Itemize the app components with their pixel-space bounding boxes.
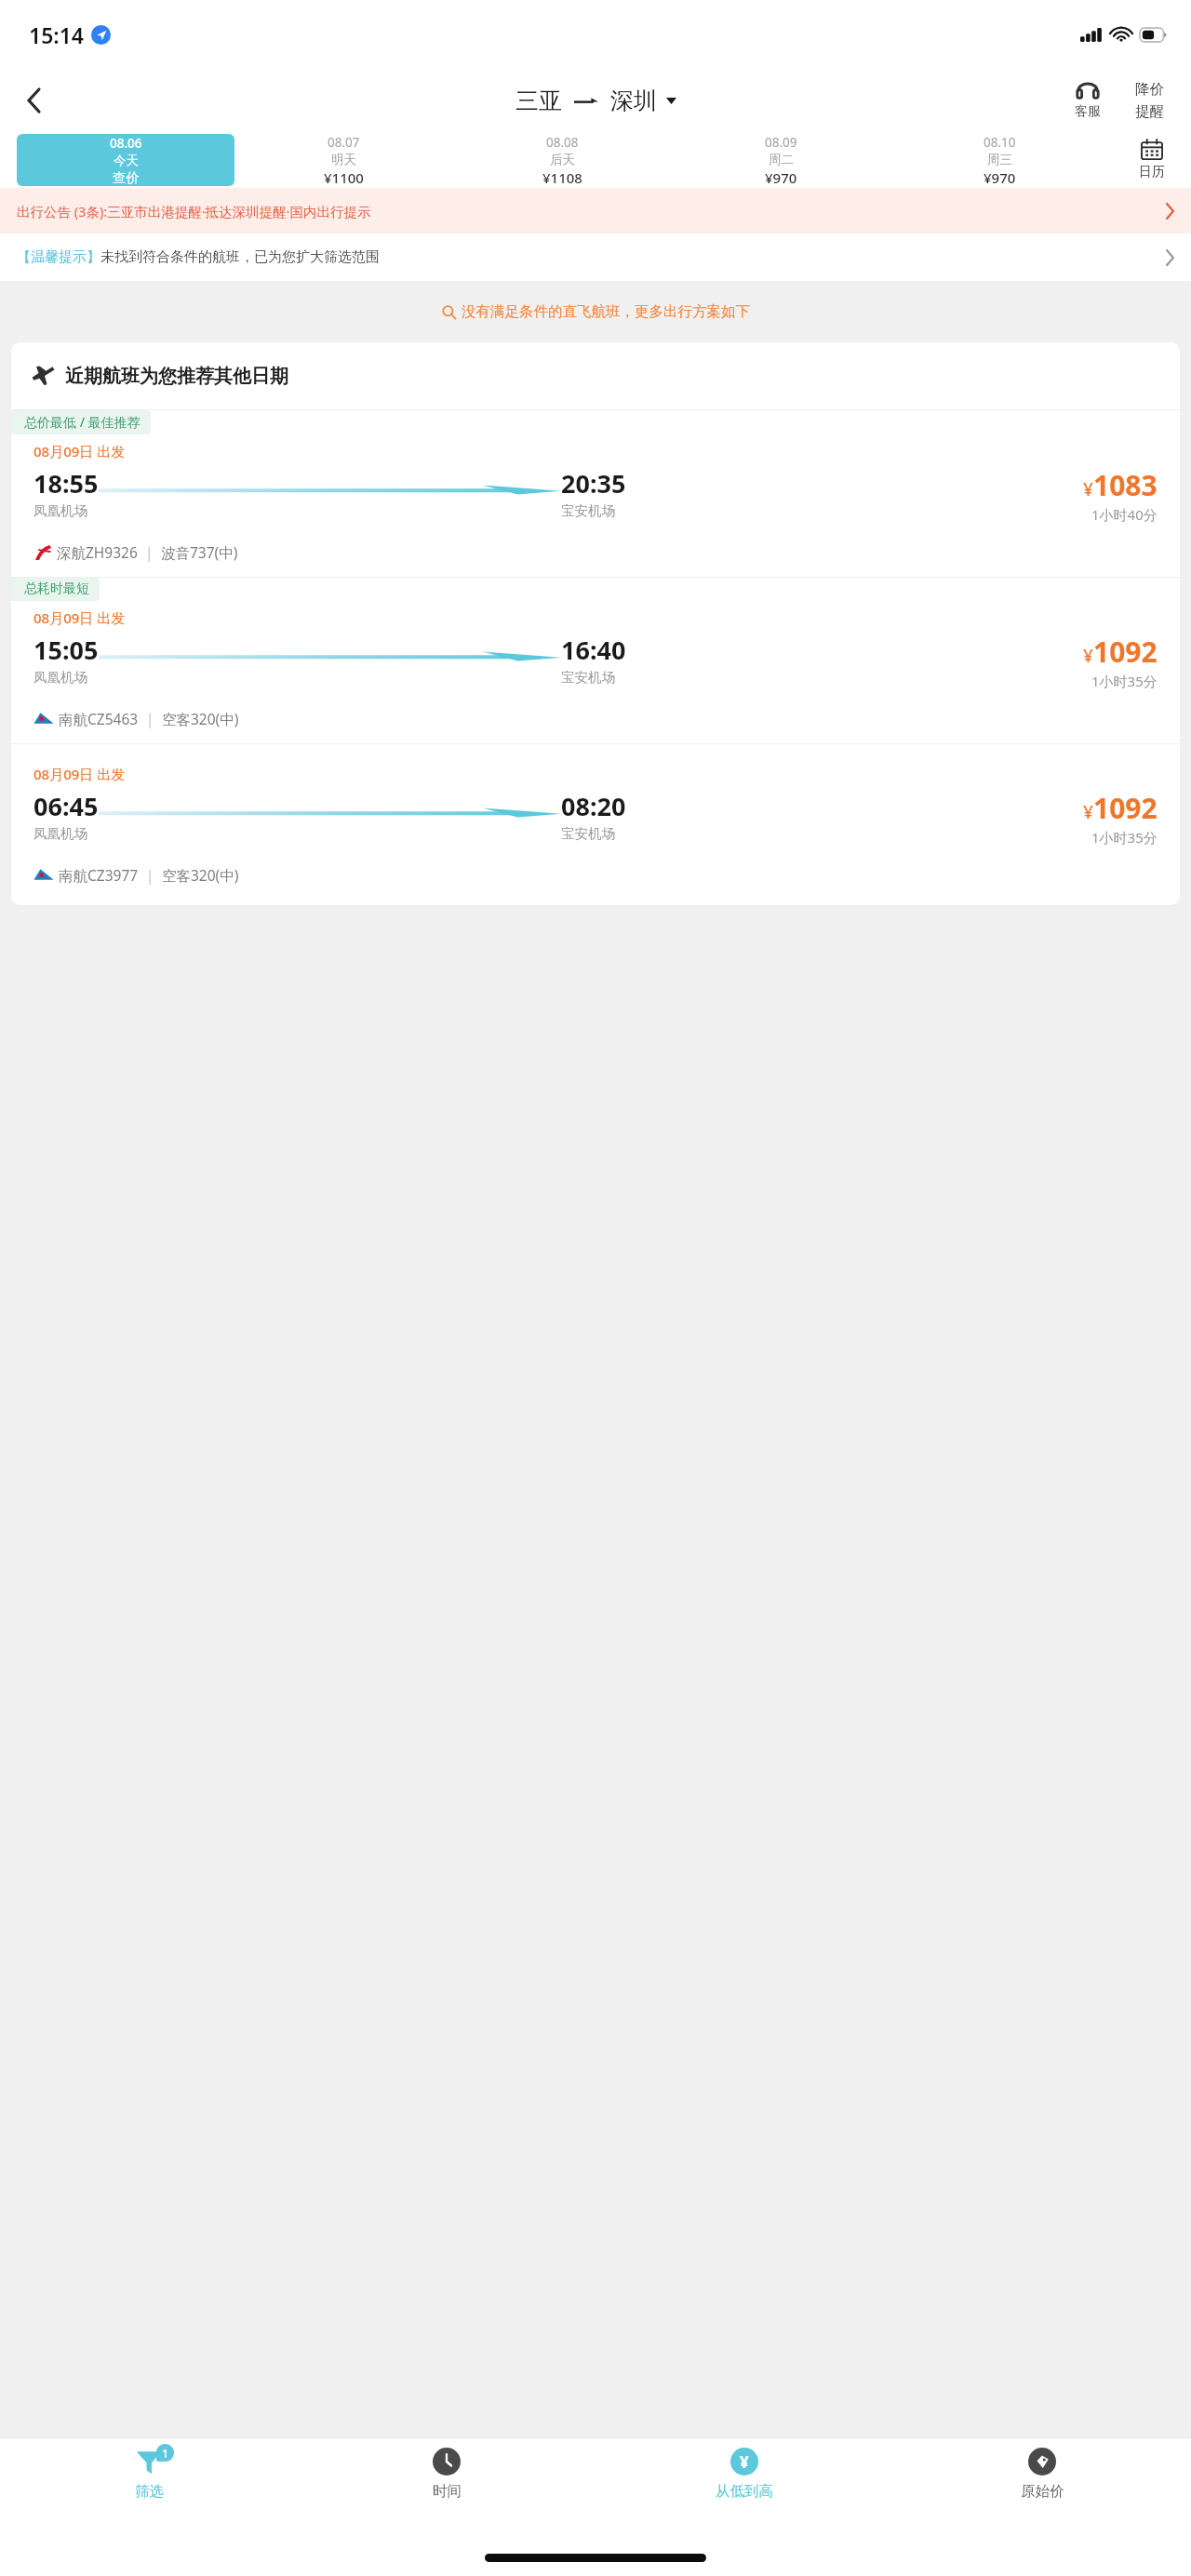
other: 日历 bbox=[1142, 140, 1162, 160]
staticText: 1小时40分 bbox=[1091, 505, 1158, 524]
staticText: 近期航班为您推荐其他日期 bbox=[65, 365, 288, 388]
staticText: 提醒 bbox=[1135, 102, 1164, 121]
staticText: 总耗时最短 bbox=[24, 581, 89, 597]
staticText: ¥ bbox=[1083, 800, 1093, 824]
staticText: 08月09日 出发 bbox=[33, 608, 126, 627]
staticText: ¥1108 bbox=[542, 168, 582, 187]
staticText: 宝安机场 bbox=[561, 502, 615, 519]
button[interactable]: ¥ bbox=[595, 2438, 893, 2524]
staticText: 空客320(中) bbox=[162, 709, 239, 728]
staticText: 日历 bbox=[1139, 164, 1165, 180]
staticText: | bbox=[139, 865, 162, 885]
staticText: 08.09 bbox=[765, 134, 797, 151]
button[interactable]: 08.09 bbox=[672, 132, 890, 188]
staticText: 降价 bbox=[1135, 80, 1164, 99]
button[interactable]: 出行公告 (3条):三亚市出港提醒·抵达深圳提醒·国内出行提示 bbox=[0, 188, 1191, 234]
staticText: 1092 bbox=[1093, 633, 1158, 671]
staticText: 08.07 bbox=[328, 134, 360, 151]
staticText: 凤凰机场 bbox=[33, 669, 87, 686]
staticText: 18:55 bbox=[33, 466, 99, 501]
staticText: 筛选 bbox=[135, 2482, 164, 2501]
staticText: 南航CZ5463 bbox=[59, 709, 139, 728]
staticText: 1083 bbox=[1093, 466, 1158, 504]
button[interactable]: 08月09日 出发 bbox=[11, 744, 1180, 900]
staticText: 08月09日 出发 bbox=[33, 765, 126, 783]
staticText: 从低到高 bbox=[716, 2482, 773, 2501]
staticText: 15:05 bbox=[33, 633, 99, 667]
staticText: 08.10 bbox=[984, 134, 1016, 151]
staticText: ¥ bbox=[1083, 477, 1093, 501]
staticText: | bbox=[139, 709, 162, 728]
staticText: ¥1100 bbox=[324, 168, 364, 187]
staticText: 明天 bbox=[331, 152, 356, 167]
staticText: 总价最低 / 最佳推荐 bbox=[24, 413, 141, 431]
button[interactable]: 08.07 bbox=[234, 132, 453, 188]
staticText: ¥970 bbox=[765, 168, 797, 187]
staticText: 1 bbox=[162, 2446, 168, 2461]
staticText: 客服 bbox=[1075, 103, 1101, 120]
staticText: 凤凰机场 bbox=[33, 502, 87, 519]
staticText: 深圳 bbox=[610, 87, 657, 115]
staticText: ¥ bbox=[1083, 644, 1093, 668]
staticText: 08.06 bbox=[110, 135, 142, 152]
button[interactable]: 【温馨提示】 bbox=[0, 234, 1191, 281]
staticText: 08月09日 出发 bbox=[33, 442, 126, 460]
staticText: 没有满足条件的直飞航班，更多出行方案如下 bbox=[462, 302, 750, 321]
staticText: 宝安机场 bbox=[561, 669, 615, 686]
staticText: 宝安机场 bbox=[561, 825, 615, 842]
staticText: ¥970 bbox=[984, 168, 1016, 187]
button[interactable]: 时间 bbox=[298, 2438, 595, 2524]
button[interactable]: 08.08 bbox=[453, 132, 672, 188]
staticText: 出行公告 (3条):三亚市出港提醒·抵达深圳提醒·国内出行提示 bbox=[17, 202, 1166, 220]
staticText: 08:20 bbox=[561, 789, 626, 823]
staticText: 1小时35分 bbox=[1091, 672, 1158, 690]
staticText: 20:35 bbox=[561, 466, 626, 501]
staticText: ¥ bbox=[740, 2451, 749, 2473]
staticText: 08.08 bbox=[546, 134, 579, 151]
staticText: 波音737(中) bbox=[161, 542, 238, 562]
staticText: 未找到符合条件的航班，已为您扩大筛选范围 bbox=[100, 248, 1166, 266]
staticText: 后天 bbox=[550, 152, 575, 167]
staticText: | bbox=[138, 542, 161, 562]
staticText: 06:45 bbox=[33, 789, 99, 823]
staticText: 深航ZH9326 bbox=[57, 542, 138, 562]
button[interactable]: 1 bbox=[0, 2438, 298, 2524]
button[interactable]: 08.10 bbox=[890, 132, 1109, 188]
staticText: 15:14 bbox=[29, 20, 84, 49]
staticText: 周二 bbox=[769, 152, 794, 167]
button[interactable]: 总耗时最短 bbox=[11, 578, 1180, 743]
button[interactable]: 08.06 bbox=[17, 134, 234, 186]
staticText: 1小时35分 bbox=[1091, 828, 1158, 847]
button[interactable]: Back bbox=[9, 76, 58, 125]
staticText: 今天 bbox=[114, 153, 139, 168]
button[interactable]: 原始价 bbox=[893, 2438, 1191, 2524]
staticText: 凤凰机场 bbox=[33, 825, 87, 842]
staticText: 南航CZ3977 bbox=[59, 865, 139, 885]
button[interactable]: 日历 bbox=[1113, 132, 1191, 188]
staticText: 【温馨提示】 bbox=[17, 248, 100, 266]
staticText: 三亚 bbox=[515, 87, 562, 115]
staticText: 原始价 bbox=[1021, 2482, 1064, 2501]
staticText: 时间 bbox=[433, 2482, 462, 2501]
staticText: 周三 bbox=[987, 152, 1012, 167]
button[interactable]: 降价 bbox=[1120, 80, 1178, 121]
button[interactable]: 客服 bbox=[1059, 82, 1117, 120]
button[interactable]: 总价最低 / 最佳推荐 bbox=[11, 410, 1180, 577]
staticText: 1092 bbox=[1093, 789, 1158, 827]
staticText: 16:40 bbox=[561, 633, 626, 667]
staticText: 空客320(中) bbox=[162, 865, 239, 885]
staticText: 查价 bbox=[113, 169, 140, 186]
